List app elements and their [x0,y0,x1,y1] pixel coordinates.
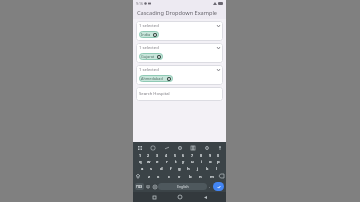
staticText: s [150,166,153,172]
button[interactable]: 2 [145,152,152,158]
staticText: c [168,174,171,180]
button[interactable]: Search Hospital [136,87,223,101]
staticText: 9 [209,153,212,158]
staticText: 1 [139,153,142,158]
staticText: . [209,184,211,188]
staticText: f [170,166,172,172]
staticText: Gujarat [141,54,155,59]
button[interactable]: 7 [189,152,196,158]
button[interactable]: Settings [152,184,157,189]
button[interactable]: i [198,158,205,165]
button[interactable]: q [137,158,144,165]
staticText: t [175,159,177,165]
staticText: 9:16 [136,1,143,6]
button[interactable]: Space [158,183,207,190]
staticText: u [191,159,194,165]
button[interactable]: Keyboard tool 7 [216,144,223,151]
staticText: p [217,159,220,165]
button[interactable]: b [187,173,194,180]
button[interactable]: 1 selected [136,43,223,63]
button[interactable]: Back [201,193,209,201]
button[interactable]: r [163,158,170,165]
button[interactable]: 9 [207,152,214,158]
button[interactable]: f [167,165,174,172]
button[interactable]: g [176,165,183,172]
button[interactable]: Emoji [146,184,151,189]
button[interactable]: Keyboard tool 4 [176,144,183,151]
staticText: English [177,184,189,189]
button[interactable]: o [207,158,214,165]
button[interactable]: m [208,173,215,180]
staticText: Cascading Dropdown Example [137,9,218,17]
staticText: w [147,159,151,165]
staticText: h [187,166,190,172]
button[interactable]: 3 [154,152,161,158]
staticText: a [141,166,144,172]
button[interactable]: y [180,158,187,165]
button[interactable]: Symbols [135,183,144,190]
staticText: 0 [217,153,220,158]
staticText: India [141,32,151,37]
button[interactable]: v [176,173,183,180]
button[interactable]: Home [176,193,184,201]
button[interactable]: India [139,31,159,38]
button[interactable]: Keyboard tool 2 [149,144,156,151]
button[interactable]: l [213,165,220,172]
staticText: ?123 [136,185,143,189]
staticText: 4 [165,153,168,158]
button[interactable]: 6 [180,152,187,158]
button[interactable]: Keyboard tool 1 [136,144,143,151]
button[interactable]: 1 [137,152,144,158]
staticText: x [157,174,160,180]
button[interactable]: u [189,158,196,165]
button[interactable]: a [139,165,146,172]
button[interactable]: 1 selected [136,65,223,85]
other: Remove India [153,33,157,37]
staticText: v [178,174,181,180]
staticText: 1 selected [139,45,159,51]
button[interactable]: Gujarat [139,53,163,60]
button[interactable]: j [194,165,201,172]
staticText: 2 [147,153,150,158]
button[interactable]: Keyboard tool 6 [203,144,210,151]
button[interactable]: Enter [213,182,224,191]
button[interactable]: Ahmedabad [139,75,173,82]
staticText: 5 [174,153,177,158]
staticText: y [182,159,185,165]
staticText: z [148,174,150,180]
button[interactable]: h [185,165,192,172]
button[interactable]: Recents [150,193,158,201]
button[interactable]: w [145,158,152,165]
button[interactable]: 8 [198,152,205,158]
staticText: i [201,159,203,165]
button[interactable]: p [215,158,222,165]
button[interactable]: z [145,173,152,180]
staticText: q [139,159,142,165]
button[interactable]: Shift [135,173,141,179]
button[interactable]: d [158,165,165,172]
button[interactable]: t [172,158,179,165]
staticText: Search Hospital [139,91,170,97]
staticText: b [189,174,192,180]
button[interactable]: 0 [215,152,222,158]
staticText: 1 selected [139,67,159,73]
button[interactable]: 5 [172,152,179,158]
button[interactable]: Keyboard tool 5 [189,144,196,151]
staticText: 6 [182,153,185,158]
button[interactable]: n [197,173,204,180]
staticText: j [197,166,199,172]
button[interactable]: k [204,165,211,172]
staticText: r [166,159,168,165]
button[interactable]: 1 selected [136,21,223,41]
button[interactable]: c [166,173,173,180]
button[interactable]: 4 [163,152,170,158]
staticText: l [216,166,218,172]
button[interactable]: Period [208,184,212,188]
button[interactable]: Keyboard tool 3 [163,144,170,151]
button[interactable]: Backspace [218,173,224,179]
button[interactable]: s [148,165,155,172]
staticText: 7 [191,153,194,158]
button[interactable]: x [155,173,162,180]
button[interactable]: e [154,158,161,165]
staticText: d [160,166,163,172]
